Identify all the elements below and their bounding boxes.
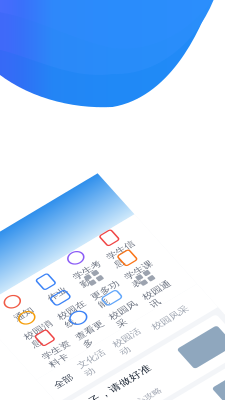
staticText: 查看更多 — [68, 190, 107, 222]
staticText: 校园在线 — [68, 148, 107, 180]
button[interactable]: 查看更多 — [62, 170, 112, 212]
staticText: 学生资料卡 — [18, 190, 57, 222]
button[interactable]: 作业 — [62, 86, 112, 128]
staticText: 文化活动 — [44, 230, 83, 263]
button[interactable]: 学生考勤 — [112, 86, 162, 128]
button[interactable]: 校园风采 — [112, 170, 162, 212]
staticText: 开学季的暖心攻略 — [9, 329, 105, 343]
staticText: 全部 — [4, 238, 30, 255]
staticText: 孩子，请做好准备！ — [9, 288, 114, 324]
button[interactable]: 学生资料卡 — [12, 170, 62, 212]
button[interactable]: 通知 — [12, 86, 62, 128]
staticText: 孩子，请做好准备！ — [9, 369, 114, 400]
staticText: 校园风采 — [118, 190, 157, 222]
staticText: 校园活动 — [97, 230, 136, 263]
